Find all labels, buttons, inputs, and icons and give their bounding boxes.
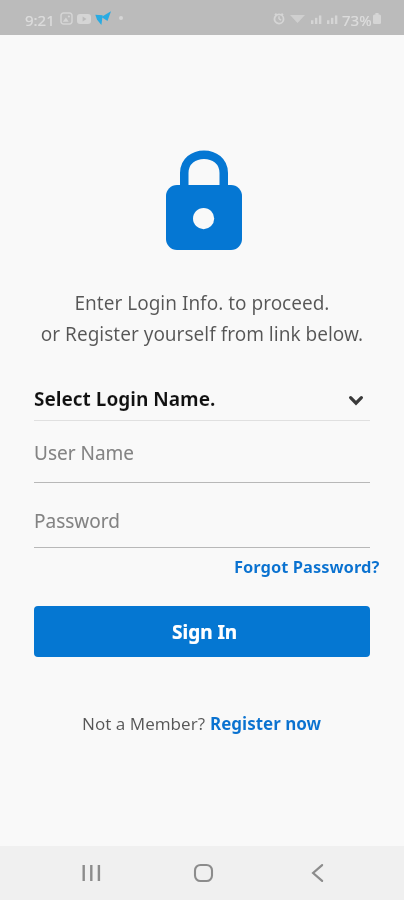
button[interactable]: User Name xyxy=(34,440,370,483)
staticText: User Name xyxy=(34,440,135,466)
button[interactable]: Home xyxy=(174,846,230,900)
staticText: Sign In xyxy=(172,619,238,645)
button[interactable]: Back xyxy=(289,846,345,900)
button[interactable]: Sign In xyxy=(34,606,370,657)
staticText: Not a Member? xyxy=(82,712,210,735)
staticText: Select Login Name. xyxy=(34,386,216,412)
staticText: 73% xyxy=(342,10,372,30)
button[interactable]: Forgot Password? xyxy=(230,550,384,582)
button[interactable]: Password xyxy=(34,508,370,548)
staticText: Register now xyxy=(210,712,322,735)
button[interactable]: Register now xyxy=(210,708,322,739)
button[interactable]: Select Login Name. xyxy=(34,385,370,421)
staticText: Forgot Password? xyxy=(234,555,380,577)
staticText: or Register yourself from link below. xyxy=(34,321,370,347)
staticText: Enter Login Info. to proceed. xyxy=(34,290,370,316)
staticText: Password xyxy=(34,508,120,534)
staticText: 9:21 xyxy=(25,10,55,30)
button[interactable]: Recents xyxy=(59,846,115,900)
